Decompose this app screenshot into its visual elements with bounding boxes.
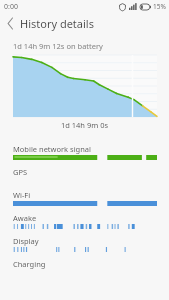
button[interactable]: GPS (0, 163, 169, 186)
button[interactable]: Back (0, 13, 20, 33)
button[interactable]: Charging (0, 255, 169, 278)
button[interactable]: Display (0, 232, 169, 255)
staticText: Charging (13, 259, 46, 269)
staticText: 15% (153, 2, 166, 11)
staticText: 1d 14h 9m 0s (0, 120, 169, 130)
staticText: GPS (13, 167, 28, 177)
staticText: Mobile network signal (13, 144, 91, 154)
button[interactable]: Mobile network signal (0, 140, 169, 163)
staticText: Display (13, 236, 39, 246)
button[interactable]: Wi-Fi (0, 186, 169, 209)
staticText: 1d 14h 9m 12s on battery (13, 41, 103, 51)
staticText: History details (20, 16, 94, 31)
staticText: Awake (13, 213, 37, 223)
button[interactable]: Awake (0, 209, 169, 232)
staticText: Wi-Fi (13, 190, 31, 200)
staticText: 0:00 (4, 2, 18, 12)
